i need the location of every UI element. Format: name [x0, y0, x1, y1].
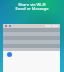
button[interactable]: Messenger — [7, 52, 12, 57]
staticText: Share via Wi-Fi Email or Message — [0, 2, 64, 12]
